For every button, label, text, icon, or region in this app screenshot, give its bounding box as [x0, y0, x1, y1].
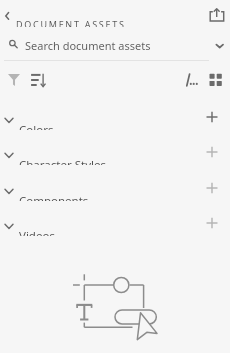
- button[interactable]: Back: [0, 4, 18, 26]
- staticText: DOCUMENT ASSETS: [16, 20, 126, 27]
- staticText: Character Styles: [19, 157, 106, 173]
- button[interactable]: Colors: [0, 102, 230, 138]
- button[interactable]: Add Character Styles: [200, 141, 224, 163]
- button[interactable]: Character Styles: [0, 137, 230, 173]
- button[interactable]: Add Colors: [200, 106, 224, 128]
- button[interactable]: Components: [0, 173, 230, 209]
- button[interactable]: Sort: [26, 69, 48, 87]
- button[interactable]: List view: [182, 69, 202, 87]
- button[interactable]: Videos: [0, 208, 230, 244]
- button[interactable]: Search document assets: [0, 31, 230, 59]
- staticText: Components: [19, 193, 89, 209]
- button[interactable]: Share: [206, 2, 230, 26]
- staticText: Videos: [19, 228, 55, 244]
- button[interactable]: Filter: [3, 69, 25, 87]
- button[interactable]: Grid view: [207, 69, 225, 87]
- button[interactable]: Add Components: [200, 177, 224, 199]
- staticText: Colors: [19, 122, 54, 138]
- button[interactable]: Expand: [208, 31, 230, 59]
- staticText: Search document assets: [25, 38, 151, 53]
- button[interactable]: Add Videos: [200, 212, 224, 234]
